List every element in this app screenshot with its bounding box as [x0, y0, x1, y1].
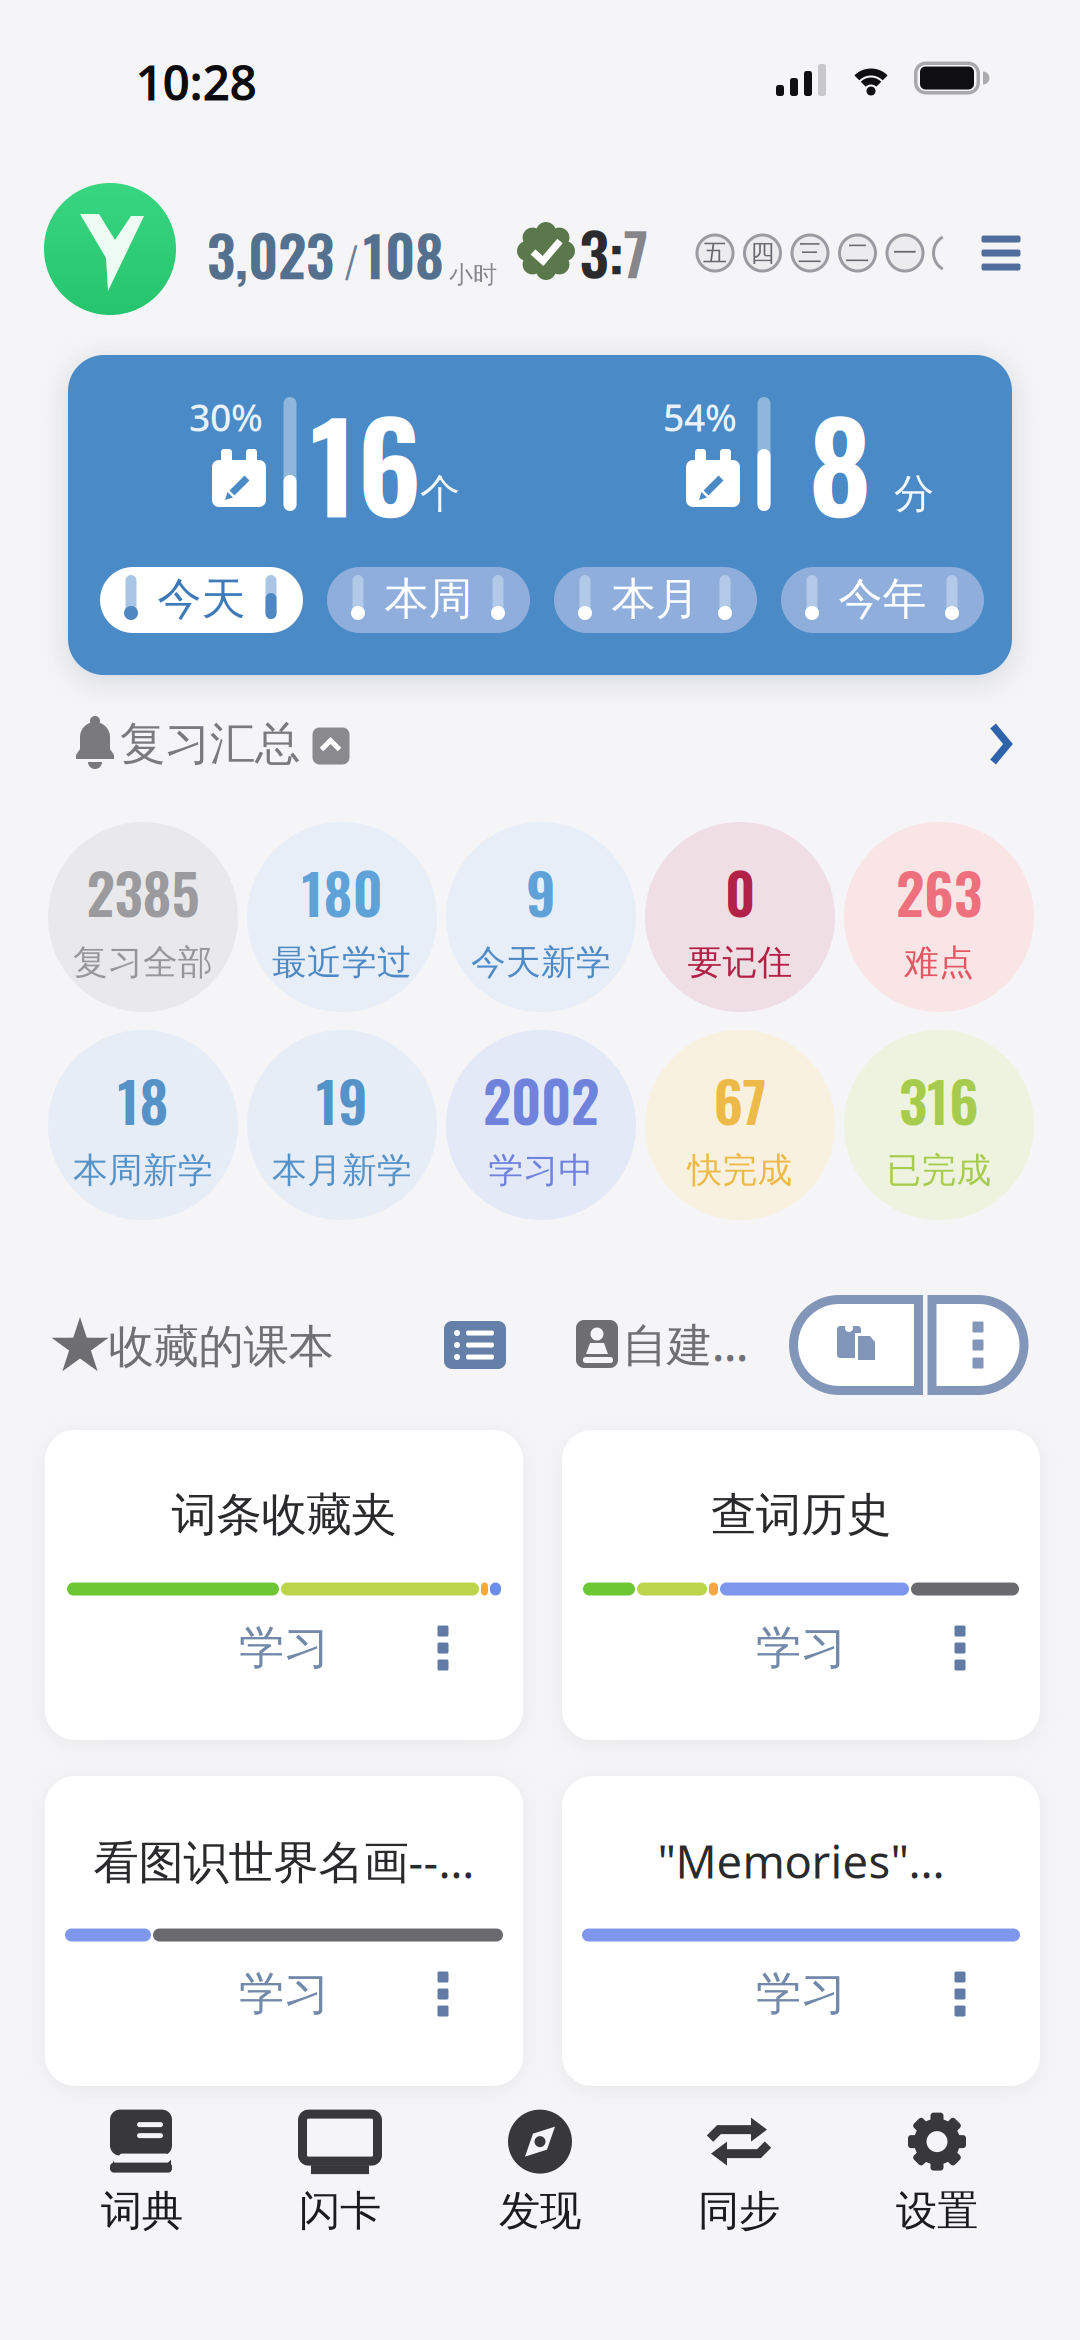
staticText: /: [344, 230, 358, 292]
staticText: 分: [894, 469, 934, 518]
staticText: 小时: [449, 260, 497, 289]
staticText: 67: [713, 1058, 766, 1141]
staticText: 个: [420, 469, 460, 518]
button[interactable]: 更多: [930, 1959, 990, 2029]
staticText: 18: [117, 1058, 168, 1141]
staticText: 一: [893, 238, 917, 268]
button[interactable]: 本月: [554, 567, 757, 633]
staticText: 2002: [483, 1058, 599, 1141]
staticText: 学习中: [488, 1149, 593, 1192]
staticText: 词典: [101, 2186, 183, 2236]
staticText: 学习: [756, 1620, 846, 1676]
button[interactable]: 粘贴: [789, 1295, 923, 1395]
staticText: 今年: [838, 572, 926, 626]
staticText: 7: [623, 209, 648, 295]
staticText: 0: [725, 850, 755, 933]
button[interactable]: 查看全部: [989, 722, 1013, 766]
staticText: 查词历史: [711, 1487, 891, 1543]
staticText: 本月: [611, 572, 699, 626]
staticText: 四: [750, 238, 774, 268]
staticText: 学习: [756, 1966, 846, 2022]
button[interactable]: 个人资料: [44, 183, 176, 315]
button[interactable]: 0: [645, 822, 835, 1012]
button[interactable]: 67: [645, 1030, 835, 1220]
staticText: 10:28: [135, 50, 256, 114]
staticText: 263: [896, 850, 982, 933]
button[interactable]: 19: [247, 1030, 437, 1220]
staticText: 2385: [86, 850, 199, 933]
staticText: 难点: [904, 941, 974, 984]
button[interactable]: 更多: [413, 1613, 473, 1683]
button[interactable]: 18: [48, 1030, 238, 1220]
staticText: 收藏的课本: [108, 1319, 333, 1375]
button[interactable]: 发现: [460, 2108, 620, 2238]
button[interactable]: 学习: [214, 1613, 354, 1683]
staticText: 自建...: [622, 1314, 748, 1374]
staticText: 同步: [698, 2186, 780, 2236]
staticText: 复习汇总: [120, 716, 300, 772]
button[interactable]: 今年: [781, 567, 984, 633]
staticText: 三: [798, 238, 822, 268]
button[interactable]: 同步: [659, 2108, 819, 2238]
button[interactable]: 学习: [214, 1959, 354, 2029]
staticText: 180: [301, 850, 382, 933]
staticText: 已完成: [886, 1149, 991, 1192]
button[interactable]: 词典: [62, 2108, 222, 2238]
staticText: 学习: [239, 1620, 329, 1676]
button[interactable]: 180: [247, 822, 437, 1012]
staticText: 要记住: [687, 941, 792, 984]
button[interactable]: 更多选项: [927, 1295, 1028, 1395]
staticText: 学习: [239, 1966, 329, 2022]
button[interactable]: 更多: [413, 1959, 473, 2029]
staticText: 316: [899, 1058, 979, 1141]
staticText: 快完成: [687, 1149, 792, 1192]
button[interactable]: 316: [844, 1030, 1034, 1220]
staticText: 复习全部: [73, 941, 213, 984]
staticText: 本周新学: [73, 1149, 213, 1192]
button[interactable]: 更多: [930, 1613, 990, 1683]
staticText: "Memories"...: [657, 1831, 944, 1891]
staticText: 本月新学: [272, 1149, 412, 1192]
staticText: 看图识世界名画--…: [93, 1831, 474, 1891]
staticText: 今天: [157, 572, 245, 626]
staticText: 108: [363, 212, 444, 295]
button[interactable]: 9: [446, 822, 636, 1012]
staticText: 设置: [896, 2186, 978, 2236]
button[interactable]: 学习: [731, 1613, 871, 1683]
staticText: 9: [526, 850, 556, 933]
button[interactable]: 本周: [327, 567, 530, 633]
staticText: 19: [316, 1058, 368, 1141]
button[interactable]: 菜单: [977, 229, 1025, 277]
button[interactable]: 列表视图: [444, 1321, 506, 1369]
button[interactable]: 设置: [857, 2108, 1017, 2238]
staticText: 3,023: [207, 212, 334, 295]
staticText: 五: [703, 238, 727, 268]
button[interactable]: 学习: [731, 1959, 871, 2029]
staticText: 今天新学: [471, 941, 611, 984]
staticText: 54%: [663, 392, 737, 442]
button[interactable]: 2385: [48, 822, 238, 1012]
staticText: 发现: [499, 2186, 581, 2236]
staticText: 16: [310, 372, 422, 552]
button[interactable]: 今天: [100, 567, 303, 633]
staticText: 最近学过: [272, 941, 412, 984]
button[interactable]: 263: [844, 822, 1034, 1012]
staticText: 3:: [579, 209, 623, 295]
button[interactable]: 收起: [312, 727, 349, 764]
staticText: 词条收藏夹: [171, 1487, 396, 1543]
staticText: 8: [808, 372, 871, 552]
button[interactable]: 闪卡: [260, 2108, 420, 2238]
staticText: 30%: [189, 392, 263, 442]
staticText: 二: [845, 238, 869, 268]
button[interactable]: 自建课本: [576, 1314, 748, 1374]
staticText: 闪卡: [299, 2186, 381, 2236]
staticText: 本周: [384, 572, 472, 626]
button[interactable]: 2002: [446, 1030, 636, 1220]
